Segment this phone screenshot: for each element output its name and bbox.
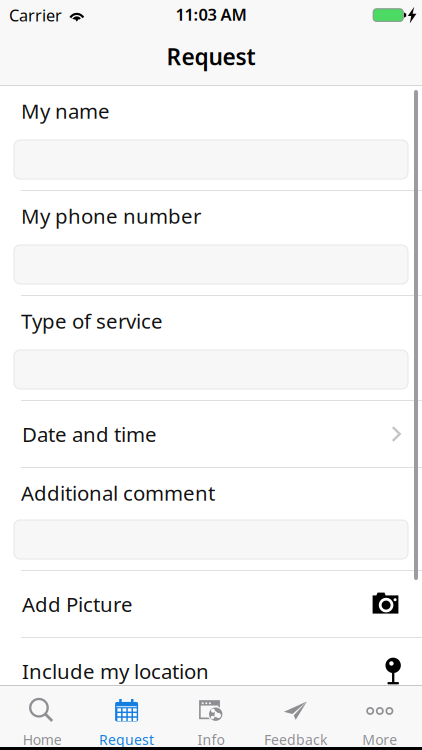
staticText: Request: [99, 730, 154, 749]
staticText: My name: [21, 97, 110, 125]
staticText: My phone number: [21, 202, 201, 230]
staticText: Feedback: [264, 730, 327, 749]
staticText: Request: [166, 41, 255, 72]
staticText: Type of service: [21, 307, 163, 335]
button[interactable]: More: [338, 684, 422, 749]
button[interactable]: Request: [84, 684, 169, 749]
button[interactable]: Feedback: [253, 684, 338, 749]
button[interactable]: Info: [169, 684, 253, 749]
staticText: 11:03 AM: [175, 3, 246, 25]
staticText: Date and time: [22, 420, 157, 448]
staticText: Home: [23, 730, 62, 749]
button[interactable]: Home: [0, 684, 84, 749]
staticText: More: [362, 730, 397, 749]
staticText: Info: [197, 730, 224, 749]
staticText: Include my location: [22, 657, 209, 685]
staticText: Additional comment: [21, 479, 215, 507]
staticText: Carrier: [9, 4, 62, 26]
staticText: Add Picture: [22, 590, 133, 618]
